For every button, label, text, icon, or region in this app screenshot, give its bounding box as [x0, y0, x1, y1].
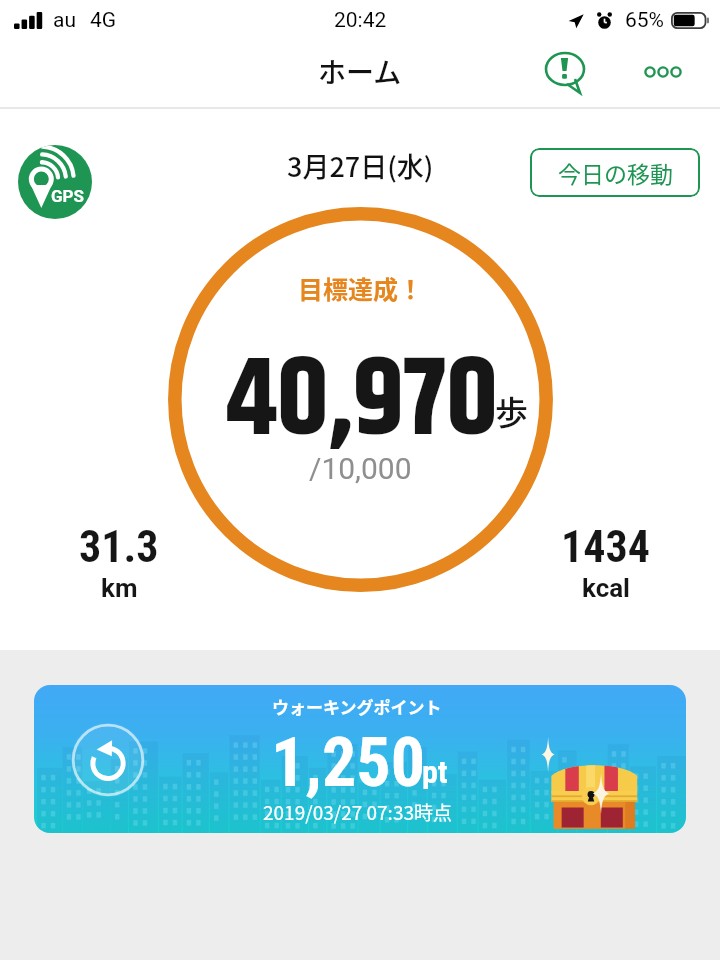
staticText: /10,000 — [309, 451, 412, 486]
button[interactable]: Notifications — [530, 37, 600, 107]
staticText: 20:42 — [334, 8, 387, 33]
staticText: km — [101, 573, 138, 603]
staticText: 65% — [625, 8, 664, 33]
staticText: ホーム — [318, 51, 402, 92]
staticText: 歩 — [495, 387, 528, 435]
staticText: 今日の移動 — [558, 156, 673, 189]
staticText: 31.3 — [79, 521, 159, 573]
staticText: 1434 — [561, 521, 650, 573]
staticText: kcal — [582, 573, 630, 603]
staticText: 3月27日(水) — [287, 146, 434, 185]
button[interactable]: Refresh — [71, 723, 145, 797]
staticText: 1,250 — [271, 723, 426, 803]
button[interactable]: More options — [632, 48, 694, 96]
staticText: 4G — [90, 8, 117, 33]
staticText: ウォーキングポイント — [272, 694, 442, 719]
staticText: au — [53, 8, 76, 33]
staticText: pt — [422, 753, 448, 791]
button[interactable]: Refresh — [34, 685, 686, 833]
button[interactable]: GPS — [18, 145, 92, 219]
staticText: GPS — [51, 186, 85, 206]
staticText: 目標達成！ — [298, 270, 424, 306]
staticText: 2019/03/27 07:33時点 — [263, 798, 452, 826]
button[interactable]: 今日の移動 — [530, 148, 700, 197]
staticText: 40,970 — [226, 319, 498, 487]
